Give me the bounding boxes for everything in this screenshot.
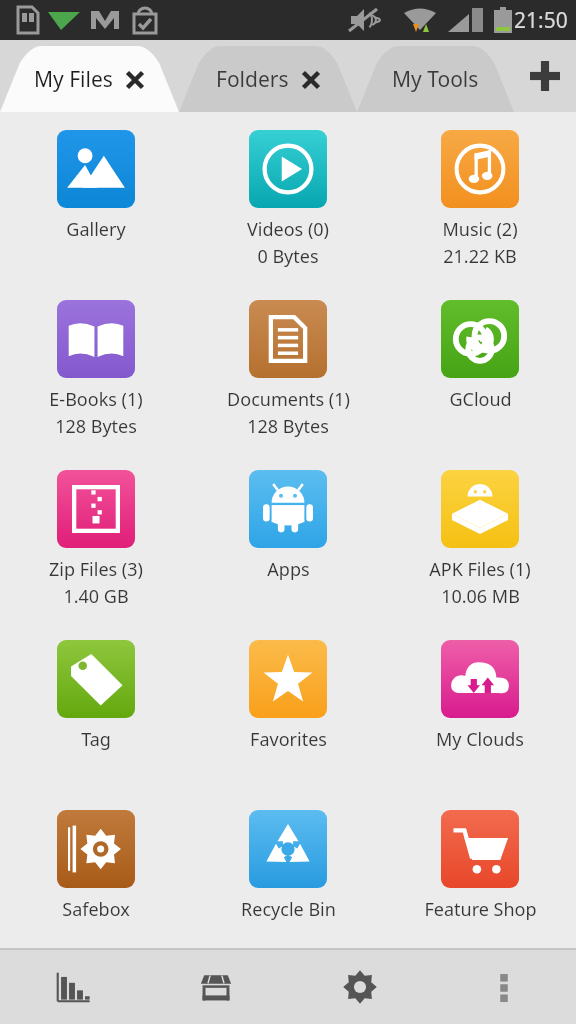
- button[interactable]: Statistics: [0, 950, 144, 1024]
- staticText: 128 Bytes: [55, 414, 137, 439]
- button[interactable]: My Clouds: [384, 632, 576, 802]
- button[interactable]: Zip Files (3): [0, 462, 192, 632]
- staticText: My Files: [34, 65, 113, 94]
- button[interactable]: Safebox: [0, 802, 192, 948]
- button[interactable]: Favorites: [192, 632, 384, 802]
- staticText: 128 Bytes: [247, 414, 329, 439]
- button[interactable]: E-Books (1): [0, 292, 192, 462]
- staticText: Music (2): [442, 217, 518, 242]
- button[interactable]: My Tools: [357, 46, 514, 112]
- button[interactable]: Videos (0): [192, 122, 384, 292]
- button[interactable]: My Files: [0, 46, 179, 112]
- staticText: Documents (1): [227, 387, 350, 412]
- button[interactable]: APK Files (1): [384, 462, 576, 632]
- staticText: Apps: [267, 557, 310, 582]
- button[interactable]: Apps: [192, 462, 384, 632]
- staticText: Favorites: [250, 727, 327, 752]
- staticText: APK Files (1): [429, 557, 531, 582]
- button[interactable]: Recycle Bin: [192, 802, 384, 948]
- button[interactable]: Documents (1): [192, 292, 384, 462]
- staticText: E-Books (1): [49, 387, 143, 412]
- button[interactable]: Feature Shop: [384, 802, 576, 948]
- staticText: My Tools: [392, 65, 479, 94]
- staticText: Tag: [81, 727, 111, 752]
- staticText: Recycle Bin: [241, 897, 336, 922]
- button[interactable]: Music (2): [384, 122, 576, 292]
- staticText: 1.40 GB: [63, 584, 129, 609]
- staticText: 10.06 MB: [441, 584, 520, 609]
- staticText: Safebox: [62, 897, 130, 922]
- button[interactable]: Gallery: [0, 122, 192, 292]
- staticText: Feature Shop: [424, 897, 537, 922]
- staticText: 21:50: [514, 6, 568, 35]
- button[interactable]: More options: [432, 950, 576, 1024]
- button[interactable]: Settings: [288, 950, 432, 1024]
- staticText: Zip Files (3): [49, 557, 143, 582]
- staticText: 21.22 KB: [443, 244, 517, 269]
- staticText: Videos (0): [247, 217, 329, 242]
- button[interactable]: Add tab: [514, 40, 576, 112]
- button[interactable]: GCloud: [384, 292, 576, 462]
- staticText: GCloud: [449, 387, 512, 412]
- staticText: My Clouds: [436, 727, 524, 752]
- staticText: Folders: [216, 65, 289, 94]
- button[interactable]: Folders: [179, 46, 357, 112]
- button[interactable]: Store: [144, 950, 288, 1024]
- staticText: 0 Bytes: [257, 244, 319, 269]
- button[interactable]: Tag: [0, 632, 192, 802]
- staticText: Gallery: [66, 217, 126, 242]
